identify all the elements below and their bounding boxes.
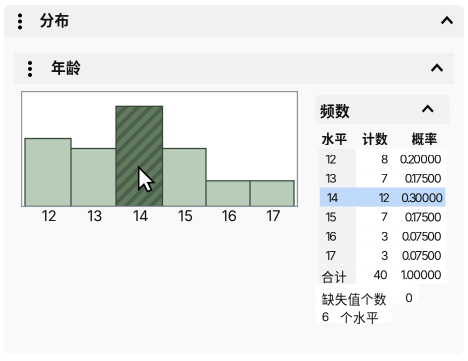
staticText: 14 [133,207,148,225]
staticText: 0 [405,290,413,305]
staticText: 12 [325,152,336,166]
staticText: 15 [178,207,193,225]
staticText: 0.17500 [405,171,442,186]
staticText: 0.30000 [401,190,443,205]
staticText: 分布 [39,9,69,30]
staticText: 3 [381,229,388,244]
staticText: 6 [322,309,329,324]
staticText: 个水平 [340,307,379,326]
staticText: 16 [325,229,336,244]
staticText: 0.07500 [402,229,442,244]
staticText: 17 [266,207,280,225]
staticText: 16 [222,207,237,225]
staticText: 12 [379,190,389,205]
button[interactable]: 频数 [315,94,449,123]
staticText: 7 [381,171,388,186]
staticText: 8 [381,152,388,166]
staticText: 13 [325,171,336,186]
staticText: 17 [325,248,336,263]
staticText: 计数 [362,129,388,147]
staticText: 水平 [321,129,347,147]
staticText: 合计 [321,267,347,285]
staticText: 0.20000 [400,152,442,166]
staticText: 12 [42,207,57,225]
button[interactable]: 年龄 [14,53,454,84]
staticText: 3 [381,248,388,263]
button[interactable]: 分布 [4,5,464,37]
staticText: 1.00000 [401,268,442,282]
staticText: 0.17500 [405,210,442,224]
staticText: 15 [325,210,336,224]
staticText: 0.07500 [402,248,442,263]
staticText: 14 [327,190,339,205]
staticText: 缺失值个数 [322,289,387,307]
staticText: 40 [373,268,388,282]
staticText: 年龄 [51,56,81,77]
staticText: 7 [381,210,388,224]
staticText: 概率 [411,129,437,147]
staticText: 频数 [320,99,350,121]
staticText: 13 [87,207,102,225]
